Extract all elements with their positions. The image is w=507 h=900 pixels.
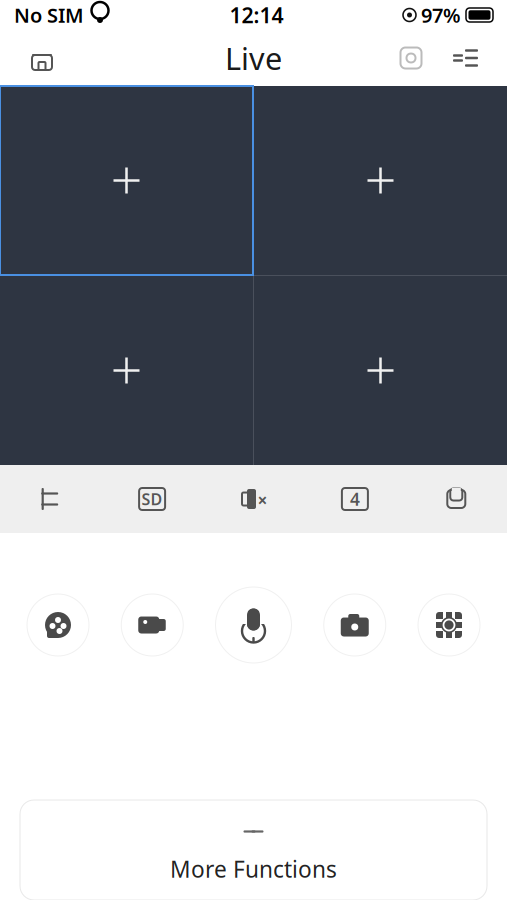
staticText: SD: [142, 488, 163, 510]
button[interactable]: Home: [14, 32, 70, 84]
staticText: No SIM: [14, 2, 84, 28]
staticText: 12:14: [229, 1, 283, 29]
button[interactable]: More Functions: [20, 800, 487, 900]
button[interactable]: Snapshot: [324, 594, 386, 656]
button[interactable]: Add camera channel: [254, 86, 507, 275]
button[interactable]: Favorites: [406, 465, 507, 533]
button[interactable]: Audio muted: [203, 465, 304, 533]
button[interactable]: Settings: [385, 32, 437, 84]
staticText: 4: [350, 487, 360, 510]
button[interactable]: Device list: [437, 32, 493, 84]
staticText: ×: [257, 488, 267, 511]
button[interactable]: Selected camera channel: [0, 86, 253, 275]
button[interactable]: Stream quality SD: [101, 465, 203, 533]
staticText: Live: [225, 38, 282, 78]
button[interactable]: Talk: [215, 587, 291, 663]
button[interactable]: Playback: [27, 594, 89, 656]
button[interactable]: Play all: [0, 465, 101, 533]
button[interactable]: PTZ control: [418, 594, 480, 656]
button[interactable]: Record video: [121, 594, 183, 656]
staticText: 97%: [421, 2, 461, 28]
button[interactable]: Add camera channel: [254, 276, 507, 465]
staticText: More Functions: [170, 854, 337, 884]
button[interactable]: Split screen layout, 4 channels: [304, 465, 406, 533]
button[interactable]: Add camera channel: [0, 276, 253, 465]
